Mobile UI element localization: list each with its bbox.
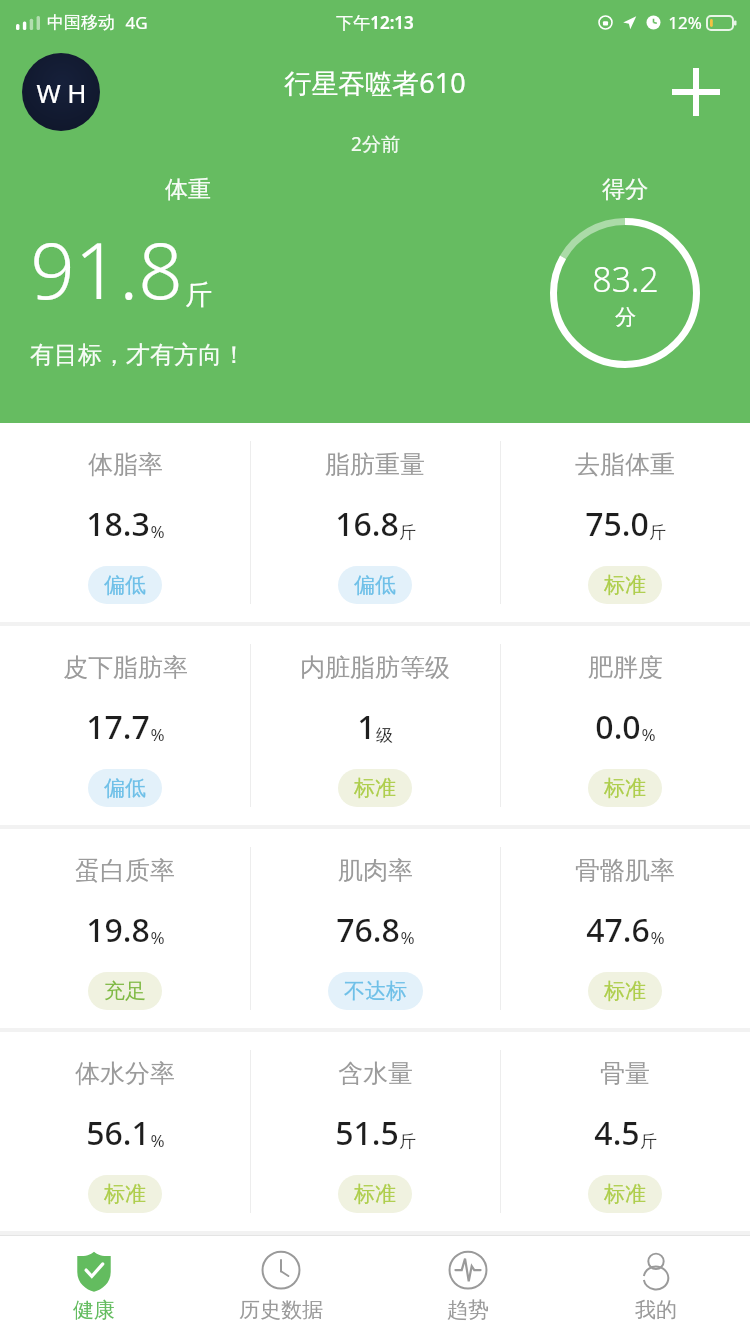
button[interactable]: 骨量: [500, 1032, 750, 1231]
staticText: 斤: [185, 278, 212, 312]
staticText: 91.8: [30, 216, 183, 322]
button[interactable]: Add: [656, 52, 736, 132]
button[interactable]: 肥胖度: [500, 626, 750, 825]
staticText: 51.5: [335, 1111, 399, 1155]
staticText: %: [400, 926, 415, 949]
staticText: 56.1: [86, 1111, 150, 1155]
button[interactable]: 内脏脂肪等级: [250, 626, 500, 825]
staticText: 标准: [354, 1181, 396, 1207]
button[interactable]: 蛋白质率: [0, 829, 250, 1028]
button[interactable]: 肌肉率: [250, 829, 500, 1028]
staticText: 我的: [635, 1297, 677, 1323]
button[interactable]: 体水分率: [0, 1032, 250, 1231]
button[interactable]: 趋势: [374, 1236, 562, 1334]
staticText: %: [641, 723, 656, 746]
staticText: 级: [376, 725, 393, 746]
staticText: 历史数据: [239, 1297, 323, 1323]
staticText: %: [150, 1129, 165, 1152]
staticText: 16.8: [335, 502, 399, 546]
staticText: 体重: [165, 175, 211, 204]
staticText: 标准: [604, 572, 646, 598]
staticText: H: [67, 75, 87, 110]
staticText: 肥胖度: [588, 652, 663, 683]
staticText: 0.0: [595, 705, 641, 749]
staticText: 标准: [354, 775, 396, 801]
staticText: 健康: [73, 1297, 115, 1323]
button[interactable]: 去脂体重: [500, 423, 750, 622]
staticText: 去脂体重: [575, 449, 675, 480]
staticText: W: [36, 75, 61, 110]
button[interactable]: Profile: [22, 53, 100, 131]
button[interactable]: 脂肪重量: [250, 423, 500, 622]
staticText: 脂肪重量: [325, 449, 425, 480]
staticText: 偏低: [354, 572, 396, 598]
staticText: 标准: [604, 978, 646, 1004]
button[interactable]: 健康: [0, 1236, 187, 1334]
staticText: 体脂率: [88, 449, 163, 480]
button[interactable]: 我的: [562, 1236, 750, 1334]
button[interactable]: 体脂率: [0, 423, 250, 622]
staticText: 得分: [602, 175, 648, 204]
staticText: 充足: [104, 978, 146, 1004]
staticText: 19.8: [86, 908, 150, 952]
staticText: 斤: [399, 1131, 416, 1152]
staticText: 蛋白质率: [75, 855, 175, 886]
staticText: %: [650, 926, 665, 949]
button[interactable]: 历史数据: [187, 1236, 374, 1334]
staticText: 标准: [104, 1181, 146, 1207]
staticText: 偏低: [104, 775, 146, 801]
staticText: 中国移动: [47, 12, 115, 33]
staticText: 内脏脂肪等级: [300, 652, 450, 683]
staticText: %: [150, 723, 165, 746]
staticText: 75.0: [585, 502, 649, 546]
button[interactable]: 含水量: [250, 1032, 500, 1231]
staticText: 分: [615, 304, 636, 330]
staticText: 皮下脂肪率: [63, 652, 188, 683]
staticText: %: [150, 926, 165, 949]
staticText: 1: [357, 705, 376, 749]
staticText: %: [150, 520, 165, 543]
staticText: 18.3: [86, 502, 150, 546]
button[interactable]: 皮下脂肪率: [0, 626, 250, 825]
staticText: 骨骼肌率: [575, 855, 675, 886]
staticText: 行星吞噬者610: [284, 64, 466, 101]
staticText: 斤: [640, 1131, 657, 1152]
staticText: 标准: [604, 1181, 646, 1207]
staticText: 偏低: [104, 572, 146, 598]
staticText: 76.8: [336, 908, 400, 952]
staticText: 肌肉率: [338, 855, 413, 886]
button[interactable]: 骨骼肌率: [500, 829, 750, 1028]
staticText: 4G: [125, 11, 148, 34]
staticText: 体水分率: [75, 1058, 175, 1089]
staticText: 下午12:13: [336, 11, 414, 34]
staticText: 83.2: [592, 256, 659, 302]
staticText: 含水量: [338, 1058, 413, 1089]
staticText: 12%: [668, 11, 702, 34]
staticText: 骨量: [600, 1058, 650, 1089]
staticText: 斤: [649, 522, 666, 543]
staticText: 2分前: [351, 131, 400, 157]
staticText: 斤: [399, 522, 416, 543]
staticText: 不达标: [344, 978, 407, 1004]
staticText: 47.6: [586, 908, 650, 952]
staticText: 4.5: [594, 1111, 640, 1155]
staticText: 标准: [604, 775, 646, 801]
staticText: 有目标，才有方向！: [30, 340, 246, 370]
staticText: 趋势: [447, 1297, 489, 1323]
staticText: 17.7: [86, 705, 150, 749]
